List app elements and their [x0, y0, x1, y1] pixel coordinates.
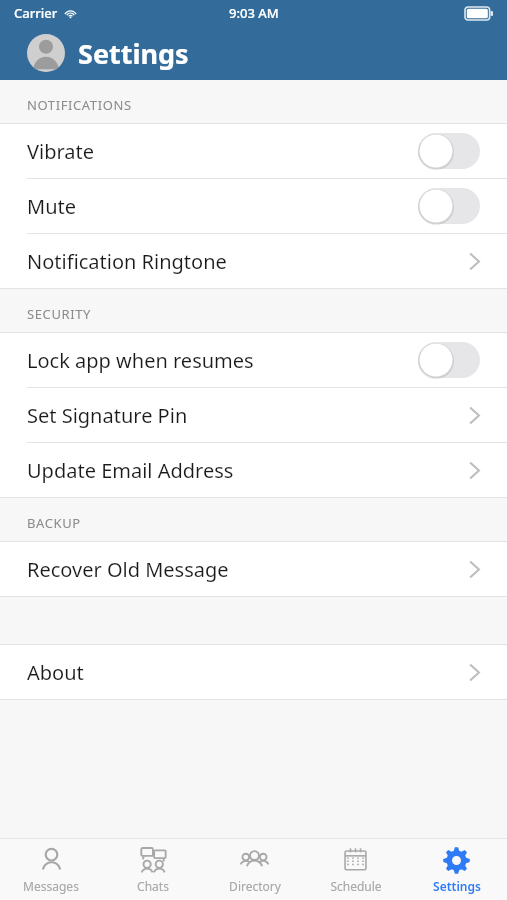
- staticText: 9:03 AM: [229, 4, 279, 22]
- button[interactable]: Notification Ringtone: [0, 234, 507, 288]
- staticText: Carrier: [14, 4, 58, 22]
- staticText: About: [27, 659, 469, 686]
- staticText: Set Signature Pin: [27, 402, 469, 429]
- button[interactable]: Set Signature Pin: [0, 388, 507, 442]
- button[interactable]: Chats: [102, 839, 204, 900]
- staticText: Notification Ringtone: [27, 248, 469, 275]
- staticText: Vibrate: [27, 138, 418, 165]
- button[interactable]: Lock app when resumes toggle: [418, 342, 480, 378]
- button[interactable]: Lock app when resumes: [0, 333, 507, 387]
- staticText: Directory: [229, 878, 281, 894]
- staticText: SECURITY: [27, 305, 91, 323]
- staticText: Mute: [27, 193, 418, 220]
- staticText: Recover Old Message: [27, 556, 469, 583]
- button[interactable]: Profile: [27, 34, 65, 72]
- button[interactable]: Vibrate toggle: [418, 133, 480, 169]
- button[interactable]: Mute toggle: [418, 188, 480, 224]
- button[interactable]: Update Email Address: [0, 443, 507, 497]
- button[interactable]: Settings: [406, 839, 507, 900]
- staticText: Update Email Address: [27, 457, 469, 484]
- staticText: Chats: [137, 878, 169, 894]
- staticText: Schedule: [330, 878, 382, 894]
- button[interactable]: Mute: [0, 179, 507, 233]
- staticText: Lock app when resumes: [27, 347, 418, 374]
- button[interactable]: About: [0, 645, 507, 699]
- staticText: NOTIFICATIONS: [27, 96, 132, 114]
- button[interactable]: Directory: [204, 839, 305, 900]
- staticText: Settings: [78, 35, 189, 72]
- button[interactable]: Recover Old Message: [0, 542, 507, 596]
- button[interactable]: Schedule: [305, 839, 406, 900]
- staticText: Messages: [23, 878, 79, 894]
- button[interactable]: Vibrate: [0, 124, 507, 178]
- staticText: Settings: [433, 878, 481, 894]
- staticText: BACKUP: [27, 514, 81, 532]
- button[interactable]: Messages: [0, 839, 102, 900]
